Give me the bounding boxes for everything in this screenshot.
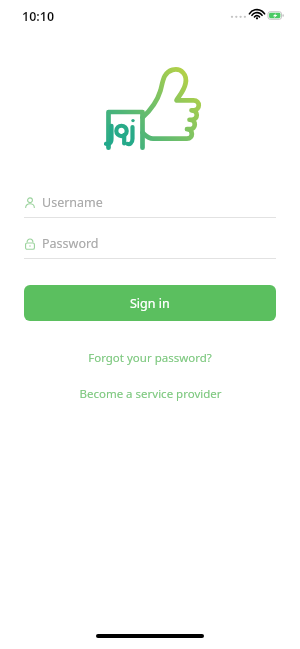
button[interactable]: Sign in xyxy=(24,285,276,321)
staticText: 10:10 xyxy=(22,8,55,25)
staticText: Password xyxy=(42,235,99,252)
staticText: Forgot your password? xyxy=(88,350,212,366)
staticText: Sign in xyxy=(130,295,170,312)
staticText: Become a service provider xyxy=(79,386,222,402)
button[interactable]: Forgot your password? xyxy=(0,347,300,369)
staticText: Username xyxy=(42,194,103,211)
button[interactable]: Become a service provider xyxy=(0,383,300,405)
